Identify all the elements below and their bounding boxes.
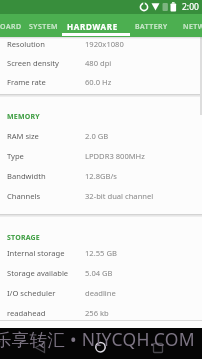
staticText: Frame rate [7, 77, 46, 87]
staticText: 12.8GB/s [85, 171, 117, 181]
button[interactable]: NETWORK [183, 22, 202, 32]
staticText: 5.04 GB [85, 268, 113, 278]
staticText: 2:00 [182, 1, 199, 13]
button[interactable]: Frame rate [7, 77, 198, 94]
staticText: 32-bit dual channel [85, 191, 154, 201]
staticText: 12.55 GB [85, 248, 117, 258]
button[interactable]: Type [7, 151, 198, 169]
button[interactable]: RAM size [7, 131, 198, 149]
staticText: Type [7, 151, 24, 161]
staticText: BOARD [0, 22, 22, 32]
button[interactable]: I/O scheduler [7, 288, 198, 306]
staticText: readahead [7, 308, 46, 318]
button[interactable]: Screen density [7, 58, 198, 75]
button[interactable] [135, 328, 202, 359]
staticText: SYSTEM [29, 22, 59, 32]
staticText: HARDWARE [67, 21, 118, 32]
button[interactable]: SYSTEM [29, 22, 59, 32]
staticText: NETWORK [183, 22, 202, 32]
staticText: 60.0 Hz [85, 77, 112, 87]
staticText: 256 kb [85, 308, 109, 318]
staticText: Storage available [7, 268, 69, 278]
staticText: RAM size [7, 131, 39, 141]
button[interactable]: Bandwidth [7, 171, 198, 189]
button[interactable]: HARDWARE [67, 21, 118, 32]
staticText: Resolution [7, 39, 45, 49]
staticText: LPDDR3 800MHz [85, 151, 145, 161]
button[interactable] [0, 328, 68, 359]
button[interactable]: BATTERY [135, 22, 168, 32]
staticText: MEMORY [7, 112, 40, 122]
staticText: Screen density [7, 58, 59, 68]
button[interactable]: readahead [7, 308, 198, 326]
staticText: Channels [7, 191, 41, 201]
button[interactable]: Resolution [7, 39, 198, 56]
staticText: 2.0 GB [85, 131, 109, 141]
staticText: Bandwidth [7, 171, 46, 181]
staticText: 乐享转汇 • NIYCQH.COM [0, 327, 195, 351]
staticText: 480 dpi [85, 58, 112, 68]
staticText: 1920x1080 [85, 39, 124, 49]
staticText: BATTERY [135, 22, 168, 32]
staticText: STORAGE [7, 233, 40, 243]
button[interactable]: Storage available [7, 268, 198, 286]
button[interactable]: Internal storage [7, 248, 198, 266]
button[interactable] [68, 328, 135, 359]
staticText: deadline [85, 288, 116, 298]
staticText: Internal storage [7, 248, 65, 258]
staticText: I/O scheduler [7, 288, 56, 298]
button[interactable]: Channels [7, 191, 198, 209]
